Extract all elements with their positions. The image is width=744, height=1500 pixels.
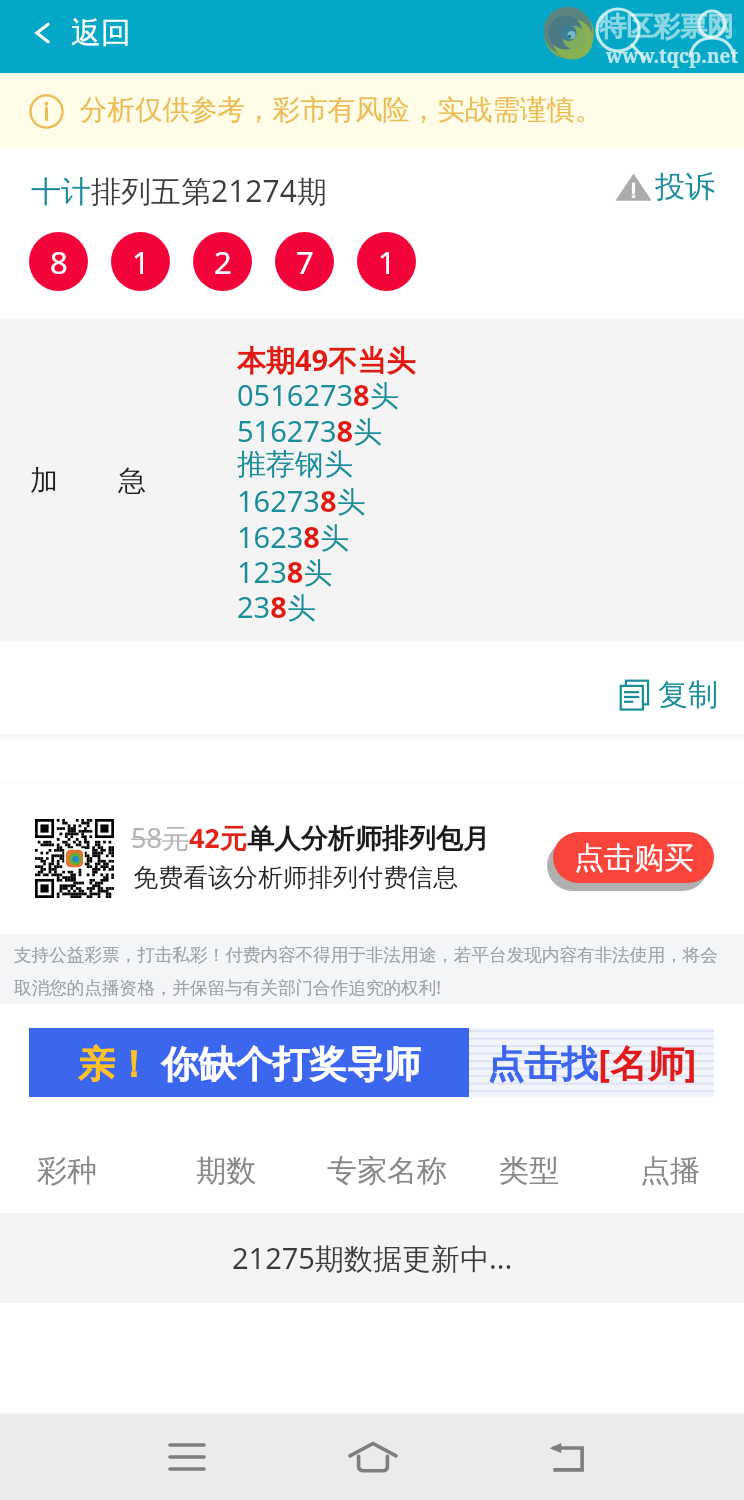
button[interactable]: Home [330,1414,416,1500]
staticText: 返回 [71,14,131,52]
button[interactable]: Recent apps [144,1414,230,1500]
staticText: 点击找[名师] [487,1037,697,1088]
staticText: 加 [30,463,58,498]
staticText: 本期49不当头 [237,340,416,376]
staticText: 58元42元单人分析师排列包月 [131,819,490,856]
staticText: 8 [50,241,68,283]
staticText: 点播 [640,1152,700,1190]
staticText: 162738头 [237,481,366,517]
button[interactable]: 复制 [613,670,722,720]
staticText: 05162738头 [237,375,399,411]
button[interactable]: 彩种 [35,1139,99,1203]
staticText: 投诉 [655,168,715,206]
button[interactable]: 期数 [194,1139,258,1203]
staticText: 亲！ 你缺个打奖导师 [78,1037,421,1088]
button[interactable]: 专家名称 [323,1139,451,1203]
button[interactable]: 类型 [497,1139,561,1203]
staticText: 类型 [499,1152,559,1190]
staticText: 彩种 [37,1152,97,1190]
button[interactable]: 扫码二维码 [35,819,114,898]
staticText: 2 [214,241,232,283]
staticText: 取消您的点播资格，并保留与有关部门合作追究的权利! [14,975,441,999]
staticText: 支持公益彩票，打击私彩！付费内容不得用于非法用途，若平台发现内容有非法使用，将会 [14,944,718,966]
staticText: 7 [296,241,314,283]
staticText: 复制 [658,676,718,714]
button[interactable]: 投诉 [609,163,721,211]
button[interactable]: 点播 [638,1139,702,1203]
staticText: 推荐钢头 [237,446,353,482]
staticText: 1 [378,241,396,283]
staticText: 21275期数据更新中... [232,1238,513,1278]
staticText: 分析仅供参考，彩市有风险，实战需谨慎。 [80,93,603,128]
staticText: 5162738头 [237,411,383,447]
staticText: 特区彩票网 [599,10,734,44]
staticText: 急 [118,463,146,498]
staticText: 十计排列五第21274期 [31,170,327,211]
staticText: 期数 [196,1152,256,1190]
staticText: 1 [132,241,150,283]
staticText: 点击购买 [574,839,694,877]
button[interactable]: Back [524,1414,610,1500]
staticText: www.tqcp.net [606,43,739,69]
staticText: 专家名称 [327,1152,447,1190]
staticText: 238头 [237,587,316,623]
button[interactable]: 返回 [19,4,143,62]
staticText: 16238头 [237,517,349,553]
button[interactable]: 亲！ 你缺个打奖导师 [29,1028,714,1097]
staticText: 1238头 [237,552,333,588]
staticText: 免费看该分析师排列付费信息 [133,862,458,893]
button[interactable]: 点击购买 [553,832,714,883]
